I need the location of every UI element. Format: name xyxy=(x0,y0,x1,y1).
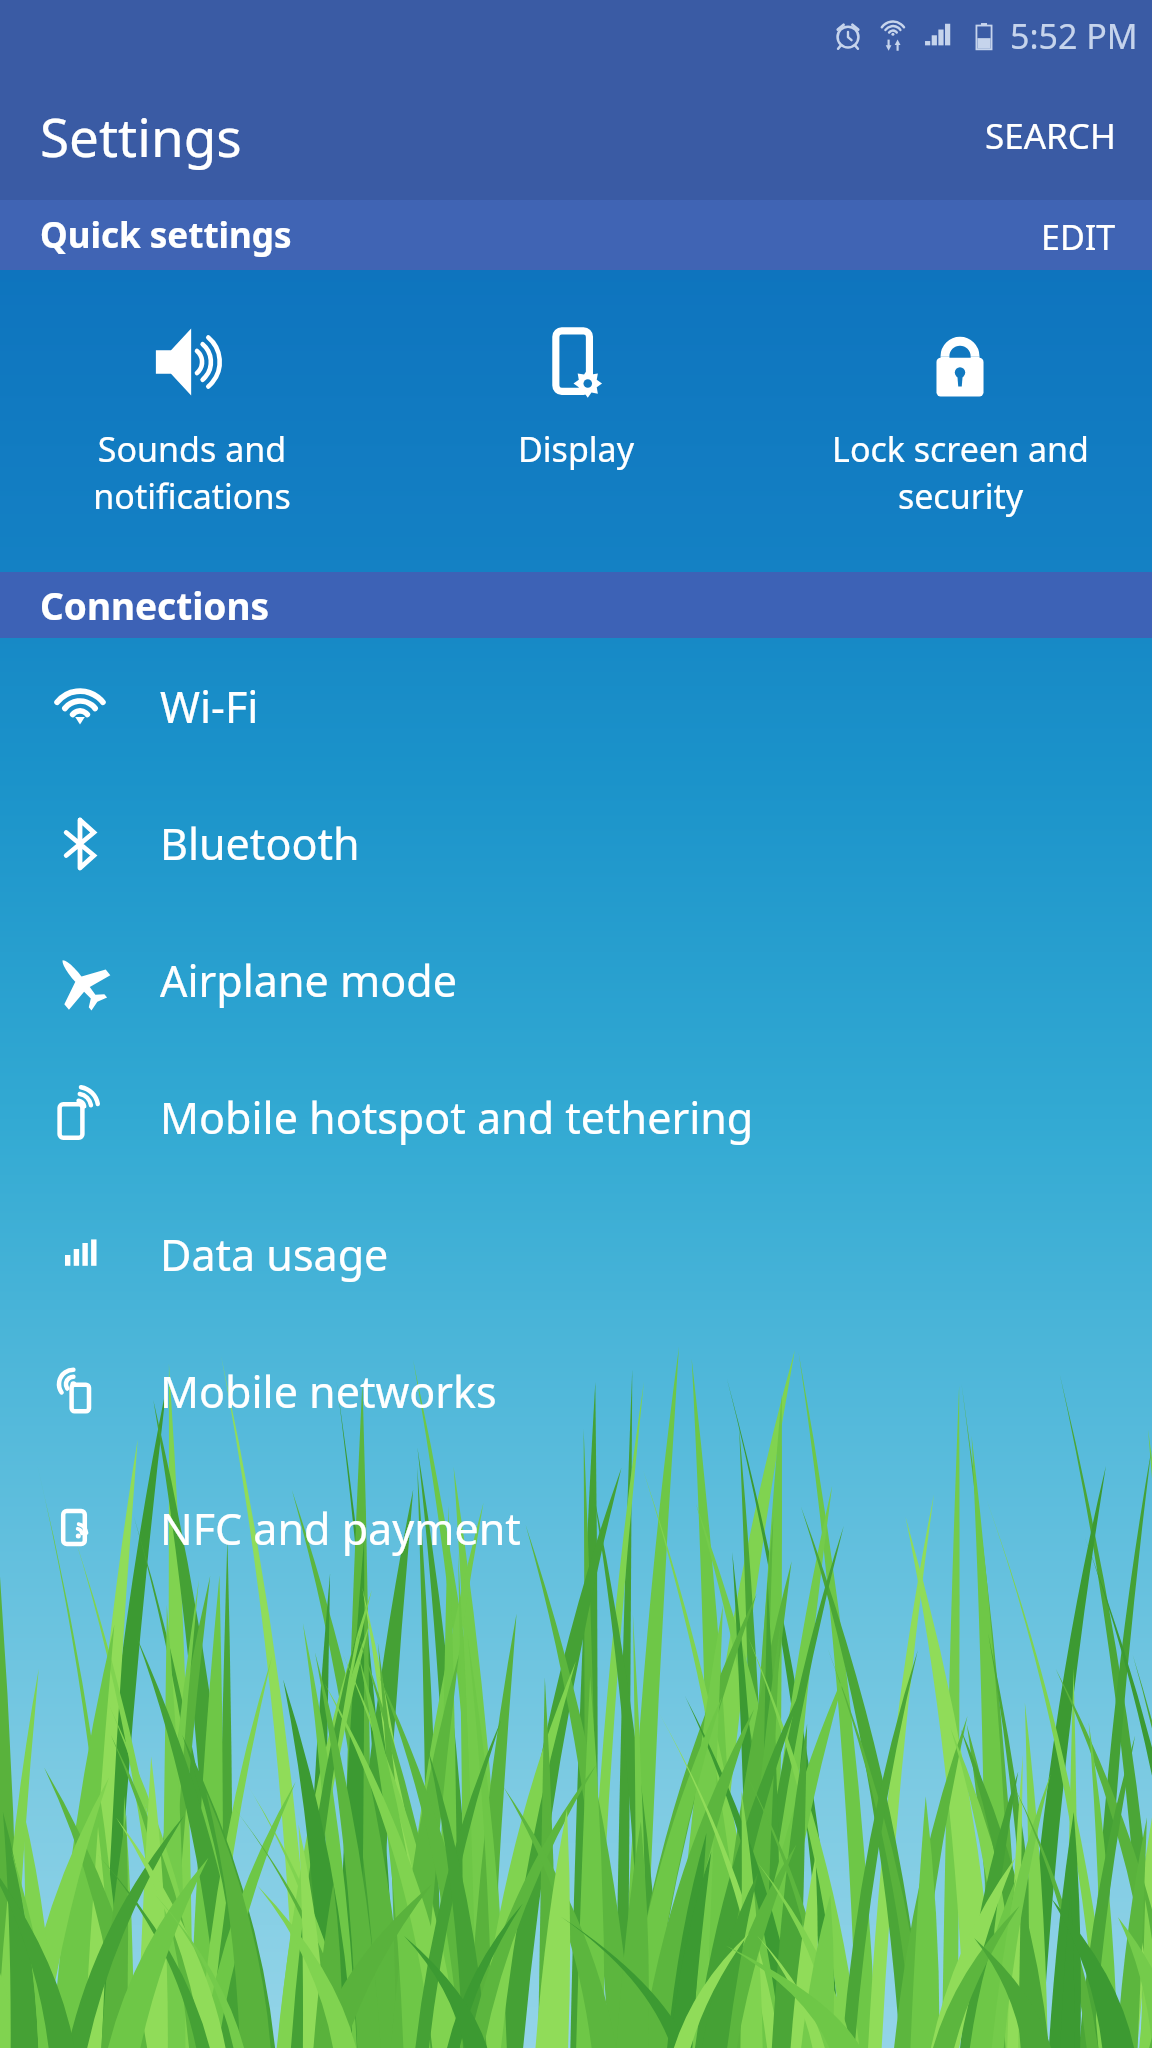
button[interactable]: Wi-Fi xyxy=(0,638,1152,775)
button[interactable]: Mobile networks xyxy=(0,1323,1152,1460)
button[interactable]: NFC and payment xyxy=(0,1460,1152,1597)
button[interactable]: EDIT xyxy=(1005,200,1152,270)
staticText: Airplane mode xyxy=(160,951,457,1010)
staticText: Connections xyxy=(40,580,270,630)
button[interactable]: Lock screen and security xyxy=(768,270,1152,572)
staticText: Quick settings xyxy=(40,211,292,259)
button[interactable]: Sounds and notifications xyxy=(0,270,384,572)
staticText: Mobile hotspot and tethering xyxy=(160,1088,754,1147)
staticText: Mobile networks xyxy=(160,1362,497,1421)
staticText: Display xyxy=(518,426,634,472)
button[interactable]: Bluetooth xyxy=(0,775,1152,912)
staticText: Data usage xyxy=(160,1225,389,1284)
button[interactable]: Display xyxy=(384,270,768,572)
staticText: Lock screen and security xyxy=(832,426,1089,519)
staticText: NFC and payment xyxy=(160,1499,521,1558)
staticText: 5:52 PM xyxy=(1010,13,1138,59)
staticText: SEARCH xyxy=(985,112,1116,160)
button[interactable]: SEARCH xyxy=(949,82,1152,190)
staticText: Sounds and notifications xyxy=(93,426,291,519)
staticText: Settings xyxy=(40,100,242,172)
staticText: EDIT xyxy=(1041,214,1116,256)
staticText: Bluetooth xyxy=(160,814,360,873)
staticText: Wi-Fi xyxy=(160,677,259,736)
button[interactable]: Data usage xyxy=(0,1186,1152,1323)
button[interactable]: Mobile hotspot and tethering xyxy=(0,1049,1152,1186)
button[interactable]: Airplane mode xyxy=(0,912,1152,1049)
